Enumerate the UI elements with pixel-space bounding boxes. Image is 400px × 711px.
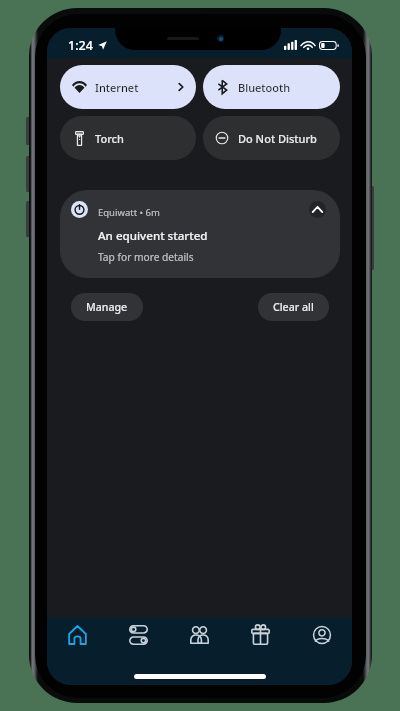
staticText: Torch <box>95 131 124 146</box>
staticText: 1:24 <box>68 37 93 54</box>
staticText: Tap for more details <box>98 250 194 264</box>
button[interactable]: Collapse <box>309 201 326 218</box>
staticText: Do Not Disturb <box>238 131 317 146</box>
button[interactable]: Clear all <box>258 293 329 321</box>
button[interactable]: Do Not Disturb <box>203 116 340 160</box>
button[interactable]: Account <box>291 617 352 653</box>
staticText: An equivent started <box>98 228 208 244</box>
button[interactable]: Controls <box>108 617 169 653</box>
button[interactable]: Bluetooth <box>203 65 340 109</box>
button[interactable]: Community <box>169 617 230 653</box>
button[interactable]: Home <box>47 617 108 653</box>
button[interactable]: Torch <box>60 116 196 160</box>
staticText: Clear all <box>273 300 314 314</box>
button[interactable]: Equiwatt • 6m <box>60 190 340 278</box>
button[interactable]: Manage <box>71 293 143 321</box>
button[interactable]: Internet <box>60 65 196 109</box>
staticText: Equiwatt • 6m <box>98 206 160 219</box>
staticText: Internet <box>95 80 139 95</box>
staticText: Bluetooth <box>238 80 291 95</box>
staticText: Manage <box>86 300 128 314</box>
button[interactable]: Rewards <box>230 617 291 653</box>
